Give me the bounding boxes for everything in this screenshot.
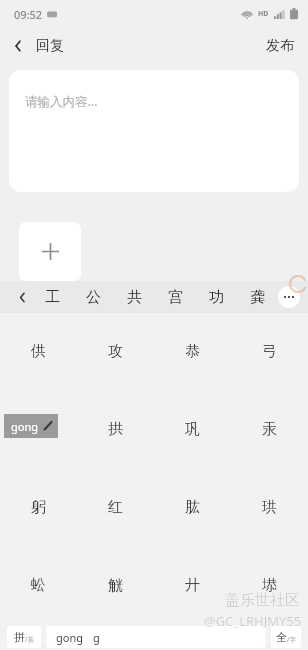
button[interactable]: 肱 <box>154 468 231 546</box>
staticText: 贡 <box>31 420 46 439</box>
button[interactable]: 拱 <box>77 390 154 468</box>
button[interactable]: 全 <box>271 626 301 648</box>
staticText: gong <box>11 419 38 434</box>
button[interactable]: More <box>278 286 300 308</box>
staticText: 公 <box>86 288 101 307</box>
button[interactable]: 廾 <box>154 546 231 624</box>
staticText: 恭 <box>185 342 200 361</box>
staticText: 请输入内容... <box>25 93 98 110</box>
staticText: 09:52 <box>14 7 43 22</box>
staticText: 汞 <box>262 420 277 439</box>
staticText: @GC_LRHJMY55 <box>204 612 302 630</box>
button[interactable]: 工 <box>32 281 73 313</box>
button[interactable]: 供 <box>0 313 77 390</box>
button[interactable]: 恭 <box>154 313 231 390</box>
button[interactable]: 贡 <box>0 390 77 468</box>
staticText: 弓 <box>262 342 277 361</box>
button[interactable]: gong <box>46 626 266 648</box>
staticText: 发布 <box>266 37 294 55</box>
other: Edit <box>41 419 55 433</box>
button[interactable]: 觥 <box>77 546 154 624</box>
button[interactable]: 宫 <box>155 281 196 313</box>
button[interactable]: 共 <box>114 281 155 313</box>
staticText: g <box>93 630 100 645</box>
staticText: 肱 <box>185 498 200 517</box>
staticText: 回复 <box>36 37 64 55</box>
staticText: 功 <box>209 288 224 307</box>
button[interactable]: Back <box>0 33 74 59</box>
staticText: /字 <box>287 635 296 644</box>
staticText: 攻 <box>108 342 123 361</box>
staticText: 巩 <box>185 420 200 439</box>
staticText: 全 <box>276 630 287 644</box>
staticText: 拱 <box>108 420 123 439</box>
staticText: 廾 <box>185 576 200 595</box>
button[interactable]: 公 <box>73 281 114 313</box>
other: Back <box>10 38 26 54</box>
staticText: 龚 <box>250 288 265 307</box>
button[interactable]: 躬 <box>0 468 77 546</box>
staticText: 红 <box>108 498 123 517</box>
staticText: HD <box>258 9 269 19</box>
button[interactable]: gong <box>4 414 58 438</box>
staticText: 珙 <box>262 498 277 517</box>
staticText: 躬 <box>31 498 46 517</box>
button[interactable]: 攻 <box>77 313 154 390</box>
staticText: 觥 <box>108 576 123 595</box>
button[interactable]: 红 <box>77 468 154 546</box>
button[interactable]: 塨 <box>231 546 308 624</box>
button[interactable]: 巩 <box>154 390 231 468</box>
staticText: 拼 <box>14 630 25 644</box>
staticText: 供 <box>31 342 46 361</box>
staticText: 工 <box>45 288 60 307</box>
button[interactable]: 龚 <box>237 281 278 313</box>
staticText: gong <box>56 630 83 645</box>
button[interactable]: Previous <box>12 287 32 307</box>
staticText: 塨 <box>262 576 277 595</box>
staticText: 宫 <box>168 288 183 307</box>
staticText: 蚣 <box>31 576 46 595</box>
staticText: 盖乐世社区 <box>225 591 300 610</box>
button[interactable]: 功 <box>196 281 237 313</box>
button[interactable]: 请输入内容... <box>9 70 299 192</box>
button[interactable]: 弓 <box>231 313 308 390</box>
button[interactable]: 蚣 <box>0 546 77 624</box>
button[interactable]: 汞 <box>231 390 308 468</box>
button[interactable]: 发布 <box>252 31 308 61</box>
staticText: 共 <box>127 288 142 307</box>
button[interactable]: Add photo <box>19 222 81 281</box>
button[interactable]: 珙 <box>231 468 308 546</box>
button[interactable]: 拼 <box>7 626 41 648</box>
staticText: /英 <box>25 635 34 644</box>
